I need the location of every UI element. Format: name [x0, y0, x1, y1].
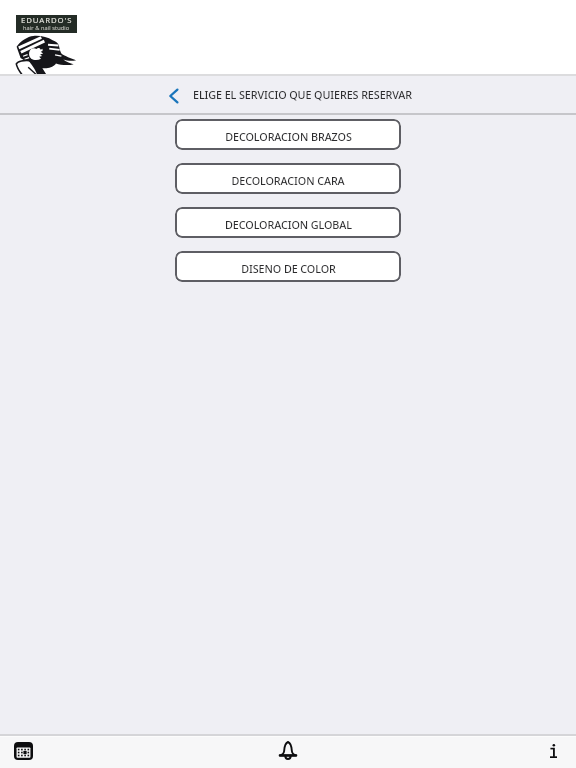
button[interactable]: Back — [160, 83, 186, 109]
staticText: EDUARDO'S — [21, 15, 73, 26]
button[interactable]: Notifications — [265, 737, 311, 768]
staticText: hair & nail studio — [23, 24, 70, 32]
button[interactable]: DECOLORACION GLOBAL — [175, 207, 401, 238]
staticText: ELIGE EL SERVICIO QUE QUIERES RESERVAR — [193, 87, 413, 102]
button[interactable]: Information — [530, 737, 576, 768]
staticText: DECOLORACION CARA — [231, 173, 345, 188]
button[interactable]: DISENO DE COLOR — [175, 251, 401, 282]
staticText: DECOLORACION BRAZOS — [225, 129, 352, 144]
staticText: DISENO DE COLOR — [241, 261, 336, 276]
button[interactable]: DECOLORACION BRAZOS — [175, 119, 401, 150]
staticText: DECOLORACION GLOBAL — [225, 217, 352, 232]
button[interactable]: Calendar — [0, 737, 46, 768]
button[interactable]: DECOLORACION CARA — [175, 163, 401, 194]
